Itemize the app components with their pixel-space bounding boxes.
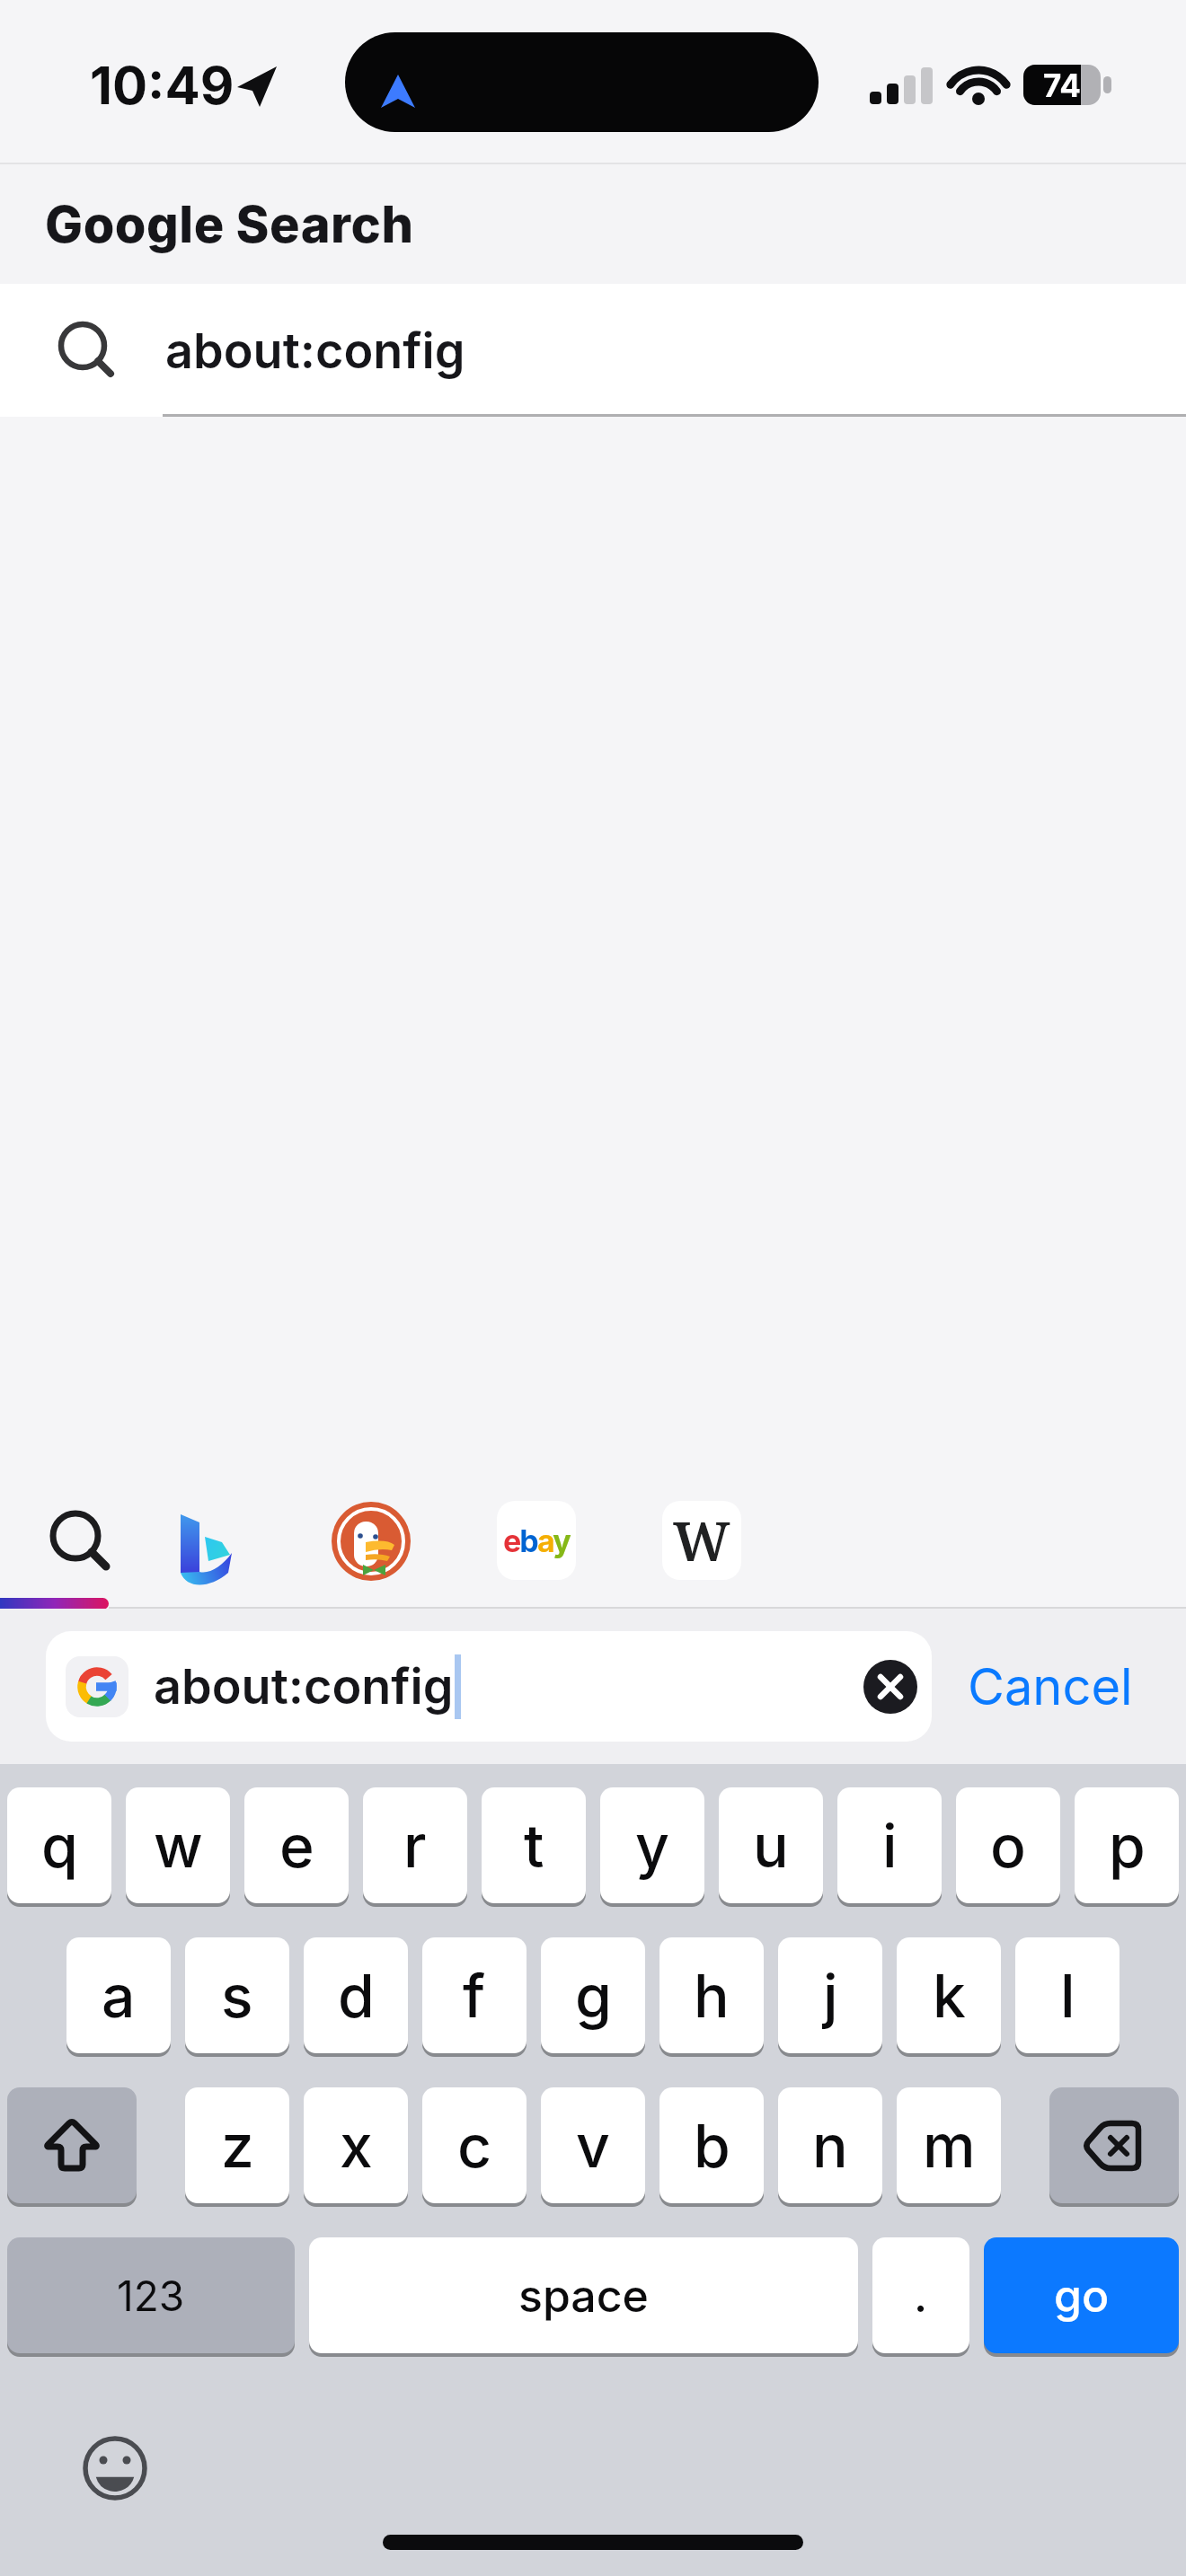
button[interactable]: 123 (7, 2237, 295, 2357)
staticText: b (694, 2110, 730, 2182)
button[interactable]: Cancel (907, 1609, 1186, 1764)
staticText: v (576, 2110, 610, 2182)
staticText: d (338, 1960, 375, 2032)
button[interactable]: g (541, 1937, 645, 2057)
staticText: c (457, 2110, 492, 2182)
button[interactable] (863, 1660, 917, 1714)
staticText: about:config (154, 1657, 454, 1716)
staticText: o (990, 1810, 1026, 1882)
button[interactable]: p (1075, 1787, 1179, 1907)
button[interactable]: k (897, 1937, 1001, 2057)
staticText: x (340, 2110, 373, 2182)
button[interactable] (331, 1501, 410, 1580)
staticText: k (933, 1960, 966, 2032)
button[interactable]: W (662, 1501, 741, 1580)
button[interactable] (40, 1501, 119, 1580)
staticText: s (221, 1960, 253, 2032)
button[interactable]: l (1015, 1937, 1120, 2057)
staticText: 74 (1043, 66, 1081, 104)
button[interactable] (81, 2434, 149, 2502)
staticText: i (882, 1810, 898, 1882)
button[interactable]: go (984, 2237, 1179, 2357)
button[interactable]: o (956, 1787, 1060, 1907)
button[interactable] (165, 1501, 244, 1580)
staticText: q (41, 1810, 78, 1882)
button[interactable]: z (185, 2087, 289, 2207)
staticText: l (1060, 1960, 1075, 2032)
staticText: r (403, 1810, 427, 1882)
button[interactable] (7, 2087, 137, 2207)
staticText: go (1054, 2269, 1110, 2323)
button[interactable]: q (7, 1787, 111, 1907)
staticText: ebay (503, 1522, 570, 1559)
button[interactable]: about:config (46, 1631, 932, 1742)
button[interactable]: x (304, 2087, 408, 2207)
button[interactable]: i (837, 1787, 942, 1907)
staticText: . (914, 2269, 928, 2323)
button[interactable]: space (309, 2237, 858, 2357)
button[interactable] (1049, 2087, 1179, 2207)
staticText: j (823, 1960, 838, 2032)
staticText: h (694, 1960, 730, 2032)
staticText: z (221, 2110, 254, 2182)
staticText: f (463, 1960, 486, 2032)
staticText: Cancel (968, 1656, 1133, 1717)
button[interactable]: h (659, 1937, 764, 2057)
button[interactable]: t (482, 1787, 586, 1907)
staticText: m (923, 2110, 976, 2182)
button[interactable]: e (244, 1787, 349, 1907)
button[interactable]: w (126, 1787, 230, 1907)
staticText: p (1109, 1810, 1146, 1882)
staticText: e (279, 1810, 314, 1882)
button[interactable]: m (897, 2087, 1001, 2207)
staticText: space (518, 2269, 649, 2323)
button[interactable]: ebay (497, 1501, 576, 1580)
button[interactable]: . (872, 2237, 969, 2357)
button[interactable]: j (778, 1937, 882, 2057)
staticText: 10:49 (90, 54, 235, 117)
button[interactable] (383, 2535, 803, 2550)
button[interactable]: v (541, 2087, 645, 2207)
button[interactable]: s (185, 1937, 289, 2057)
staticText: about:config (165, 322, 465, 380)
staticText: u (753, 1810, 789, 1882)
button[interactable]: about:config (0, 284, 1186, 417)
staticText: g (575, 1960, 612, 2032)
staticText: Google Search (45, 194, 414, 255)
button[interactable]: u (719, 1787, 823, 1907)
staticText: 123 (117, 2271, 185, 2321)
staticText: W (673, 1504, 730, 1577)
button[interactable]: f (422, 1937, 527, 2057)
button[interactable]: r (363, 1787, 467, 1907)
button[interactable]: d (304, 1937, 408, 2057)
button[interactable]: b (659, 2087, 764, 2207)
staticText: a (102, 1960, 136, 2032)
staticText: y (635, 1810, 669, 1882)
staticText: t (524, 1810, 544, 1882)
button[interactable]: c (422, 2087, 527, 2207)
staticText: w (154, 1810, 203, 1882)
staticText: n (812, 2110, 848, 2182)
button[interactable]: y (600, 1787, 704, 1907)
button[interactable]: a (66, 1937, 171, 2057)
button[interactable]: n (778, 2087, 882, 2207)
